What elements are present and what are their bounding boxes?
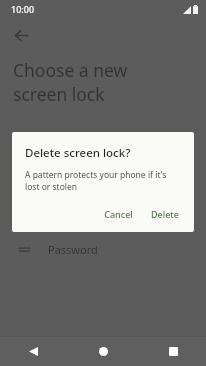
button[interactable]: Delete xyxy=(144,203,186,225)
button[interactable]: Back xyxy=(4,18,38,52)
staticText: 10:00 xyxy=(11,3,35,15)
button[interactable]: Cancel xyxy=(97,203,140,225)
button[interactable]: Back xyxy=(18,337,48,366)
staticText: Cancel xyxy=(104,208,133,220)
staticText: Pattern xyxy=(48,171,87,186)
button[interactable]: PIN xyxy=(0,206,206,235)
staticText: A pattern protects your phone if it's lo… xyxy=(25,169,181,193)
staticText: Delete screen lock? xyxy=(25,145,131,161)
staticText: Password xyxy=(48,242,98,257)
button[interactable]: Home xyxy=(88,337,118,366)
staticText: Current screen lock xyxy=(48,187,117,197)
button[interactable]: Pattern xyxy=(0,162,206,206)
staticText: Choose a new screen lock xyxy=(13,58,128,106)
button[interactable]: Recent apps xyxy=(158,337,188,366)
button[interactable]: Password xyxy=(0,235,206,264)
staticText: Delete xyxy=(151,208,179,220)
